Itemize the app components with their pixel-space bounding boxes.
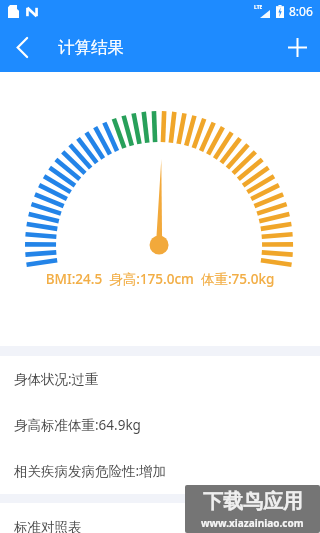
staticText: 计算结果 [58, 37, 124, 58]
staticText: www.xiazainiao.com [201, 516, 304, 530]
staticText: 8:06 [289, 3, 313, 19]
button[interactable]: Back [0, 25, 44, 69]
staticText: 身体状况:过重 [14, 370, 99, 388]
staticText: 身高标准体重:64.9kg [14, 416, 141, 434]
button[interactable]: 相关疾病发病危险性:增加 [0, 448, 320, 494]
button[interactable]: 标准对照表 [0, 503, 320, 533]
staticText: LTE [254, 4, 263, 11]
staticText: 下载鸟应用 [203, 489, 303, 514]
button[interactable]: 身高标准体重:64.9kg [0, 402, 320, 448]
button[interactable]: 身体状况:过重 [0, 356, 320, 402]
button[interactable]: Add [274, 24, 320, 70]
staticText: BMI:24.5 身高:175.0cm 体重:75.0kg [0, 270, 320, 288]
staticText: 标准对照表 [14, 519, 82, 533]
staticText: 相关疾病发病危险性:增加 [14, 462, 167, 480]
